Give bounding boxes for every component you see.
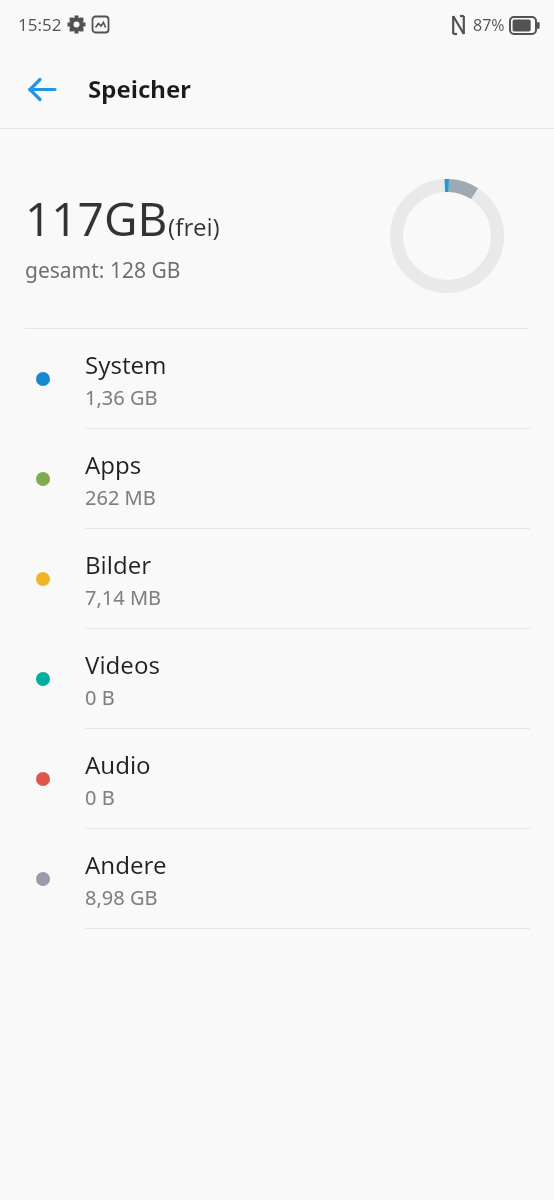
staticText: Speicher	[88, 72, 191, 105]
staticText: 15:52	[18, 13, 62, 36]
staticText: 8,98 GB	[85, 884, 158, 911]
button[interactable]	[20, 67, 64, 111]
button[interactable]: System	[0, 329, 554, 429]
button[interactable]: Bilder	[0, 529, 554, 629]
staticText: (frei)	[168, 210, 220, 243]
staticText: 87%	[473, 14, 505, 36]
staticText: Apps	[85, 448, 142, 481]
staticText: 262 MB	[85, 484, 156, 511]
button[interactable]: Andere	[0, 829, 554, 929]
staticText: Audio	[85, 748, 151, 781]
button[interactable]: Audio	[0, 729, 554, 829]
staticText: 117GB	[25, 187, 168, 250]
button[interactable]: Videos	[0, 629, 554, 729]
staticText: 0 B	[85, 784, 115, 811]
staticText: System	[85, 348, 167, 381]
staticText: 0 B	[85, 684, 115, 711]
staticText: gesamt: 128 GB	[25, 256, 181, 285]
staticText: Videos	[85, 648, 160, 681]
staticText: 7,14 MB	[85, 584, 162, 611]
button[interactable]: Apps	[0, 429, 554, 529]
staticText: Andere	[85, 848, 167, 881]
staticText: Bilder	[85, 548, 152, 581]
staticText: 1,36 GB	[85, 384, 158, 411]
